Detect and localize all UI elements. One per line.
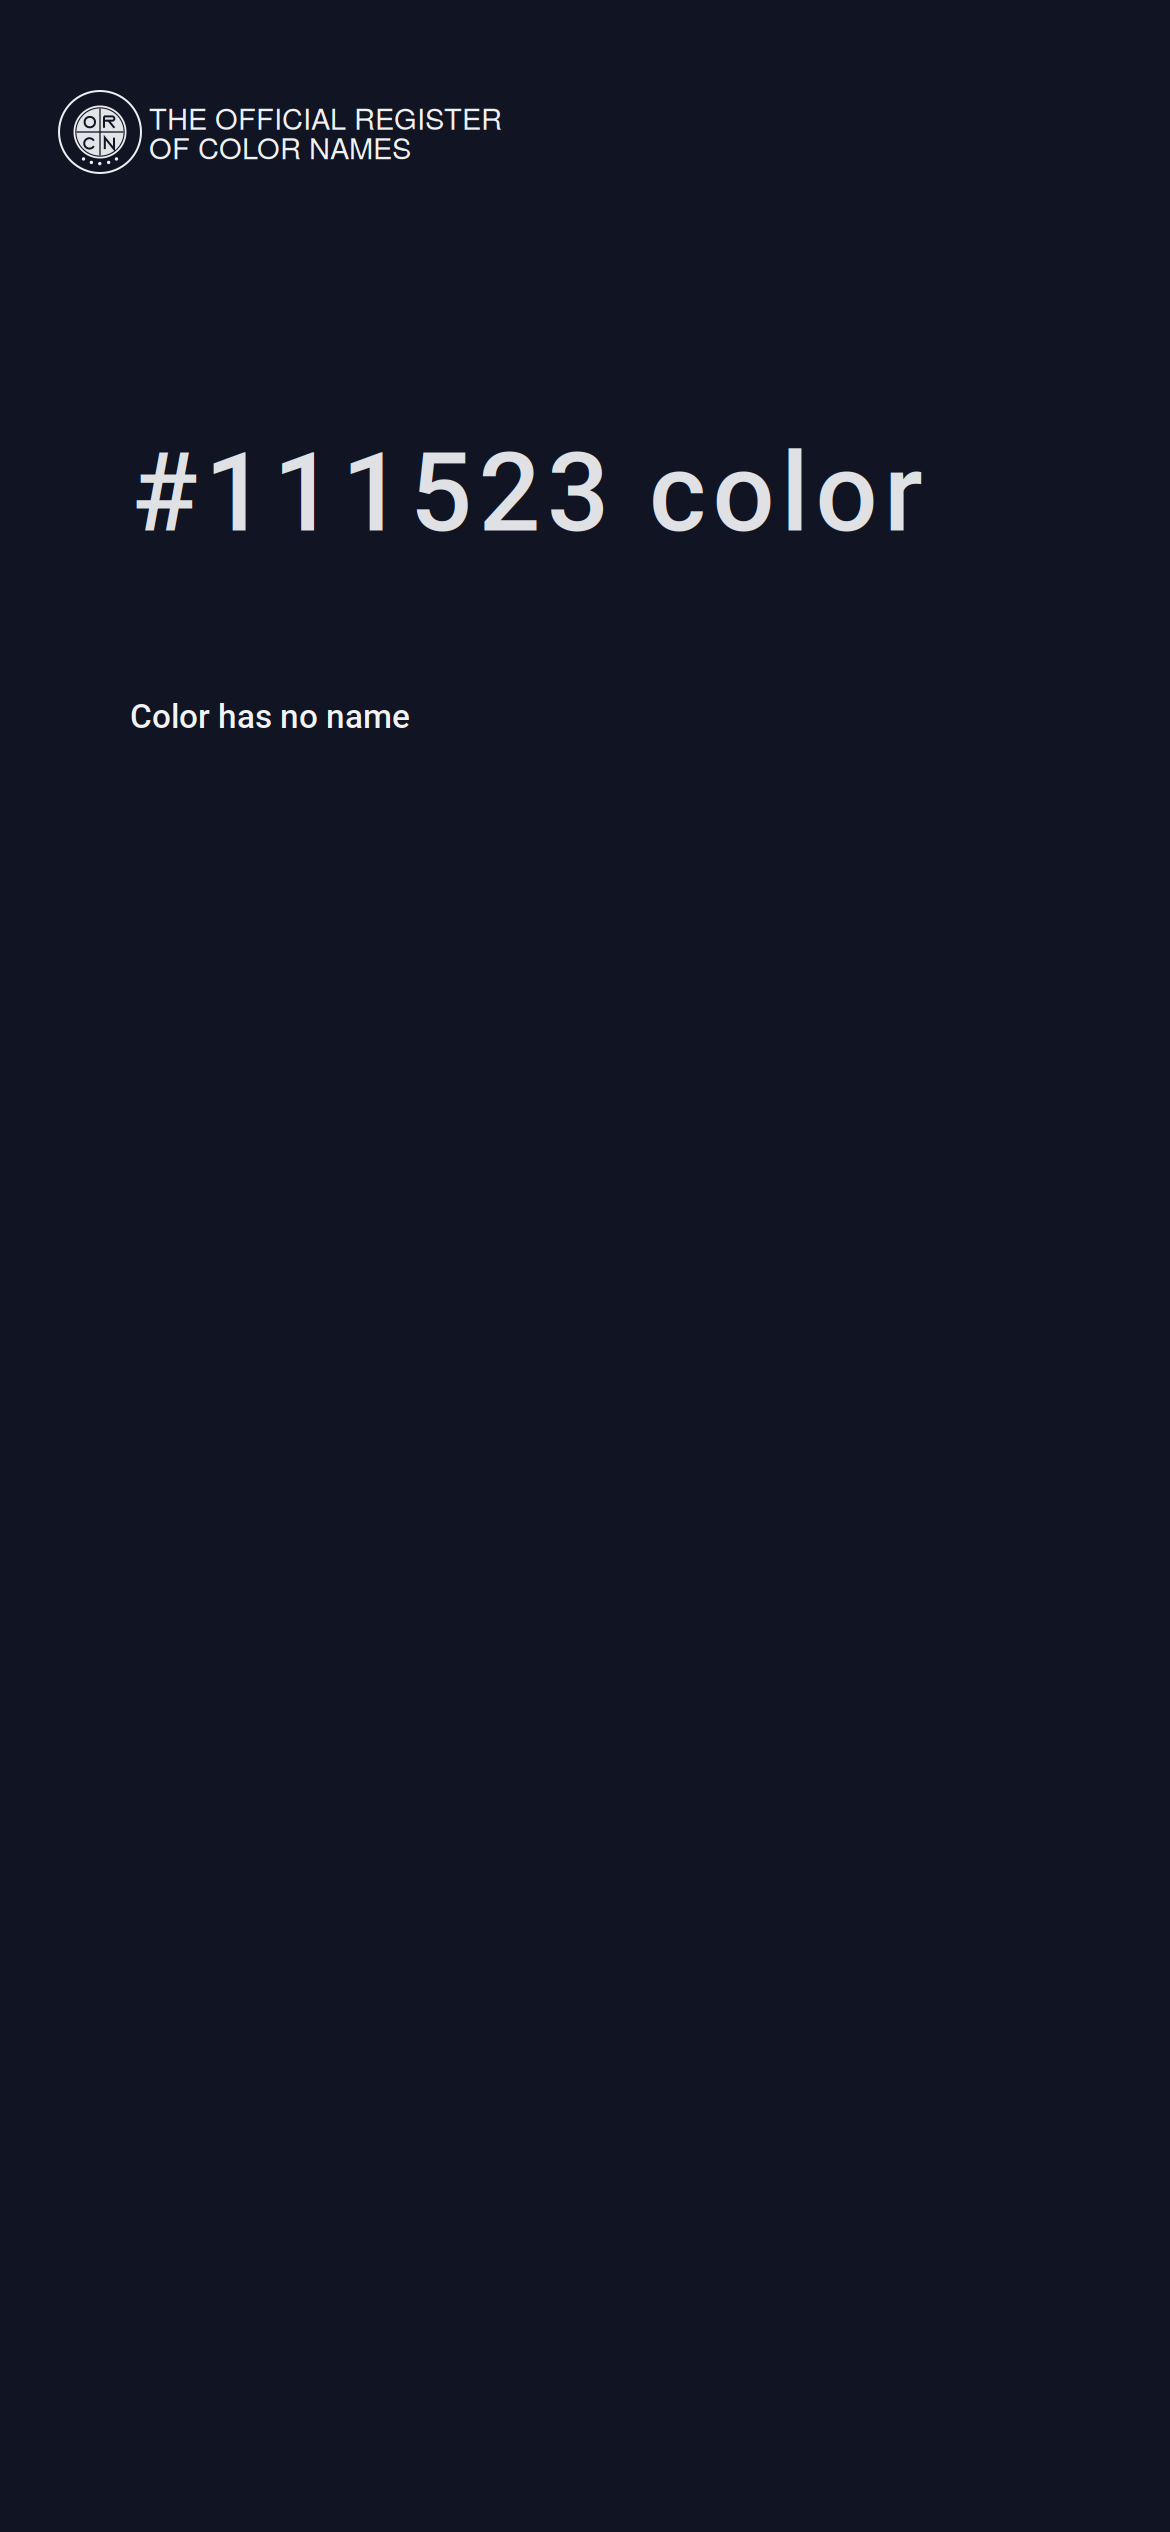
staticText: THE OFFICIAL REGISTER <box>149 96 502 138</box>
staticText: #111523 color <box>132 429 923 557</box>
staticText: OF COLOR NAMES <box>149 126 411 168</box>
staticText: Color has no name <box>130 697 410 736</box>
button[interactable]: The Official Register of Color Names — h… <box>56 88 1170 176</box>
